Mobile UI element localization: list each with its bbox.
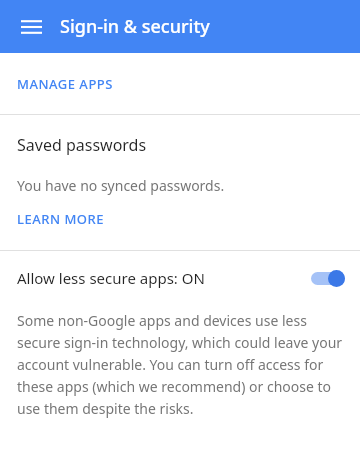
staticText: LEARN MORE [17, 210, 104, 228]
staticText: MANAGE APPS [17, 75, 113, 93]
staticText: Allow less secure apps: ON [17, 268, 205, 288]
staticText: You have no synced passwords. [17, 176, 225, 195]
button[interactable]: LEARN MORE [0, 195, 360, 242]
staticText: Saved passwords [17, 134, 147, 156]
button[interactable]: MANAGE APPS [0, 53, 360, 114]
button[interactable]: Open navigation menu [18, 14, 44, 40]
staticText: Some non-Google apps and devices use les… [17, 311, 344, 418]
staticText: Sign-in & security [60, 14, 210, 39]
button[interactable]: Allow less secure apps: ON [0, 251, 360, 305]
